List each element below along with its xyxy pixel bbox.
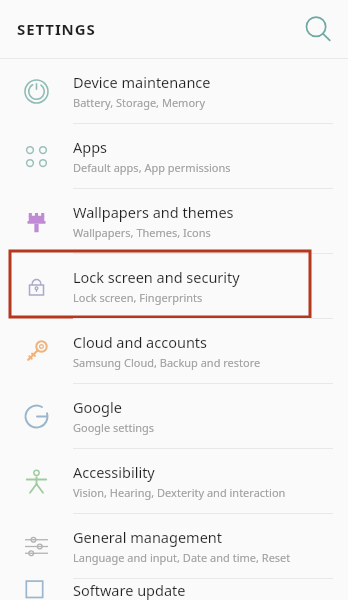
button[interactable]: Cloud and accounts: [0, 319, 348, 383]
staticText: Software update: [73, 580, 186, 600]
staticText: Google settings: [73, 420, 155, 435]
staticText: Device maintenance: [73, 72, 211, 92]
button[interactable]: Search: [302, 13, 334, 45]
staticText: General management: [73, 527, 223, 547]
button[interactable]: Device maintenance: [0, 59, 348, 123]
button[interactable]: Apps: [0, 124, 348, 188]
staticText: Lock screen and security: [73, 267, 240, 287]
button[interactable]: Google: [0, 384, 348, 448]
staticText: Google: [73, 397, 122, 417]
staticText: Default apps, App permissions: [73, 160, 231, 175]
staticText: Language and input, Date and time, Reset: [73, 550, 291, 565]
staticText: Battery, Storage, Memory: [73, 95, 206, 110]
staticText: Lock screen, Fingerprints: [73, 290, 203, 305]
staticText: Cloud and accounts: [73, 332, 208, 352]
staticText: Samsung Cloud, Backup and restore: [73, 355, 261, 370]
button[interactable]: Wallpapers and themes: [0, 189, 348, 253]
staticText: Apps: [73, 137, 108, 157]
staticText: SETTINGS: [17, 19, 96, 39]
button[interactable]: General management: [0, 514, 348, 578]
button[interactable]: Accessibility: [0, 449, 348, 513]
staticText: Wallpapers, Themes, Icons: [73, 225, 211, 240]
button[interactable]: Lock screen and security: [0, 254, 348, 318]
staticText: Wallpapers and themes: [73, 202, 234, 222]
staticText: Accessibility: [73, 462, 155, 482]
button[interactable]: Software update: [0, 579, 348, 600]
staticText: Vision, Hearing, Dexterity and interacti…: [73, 485, 286, 500]
